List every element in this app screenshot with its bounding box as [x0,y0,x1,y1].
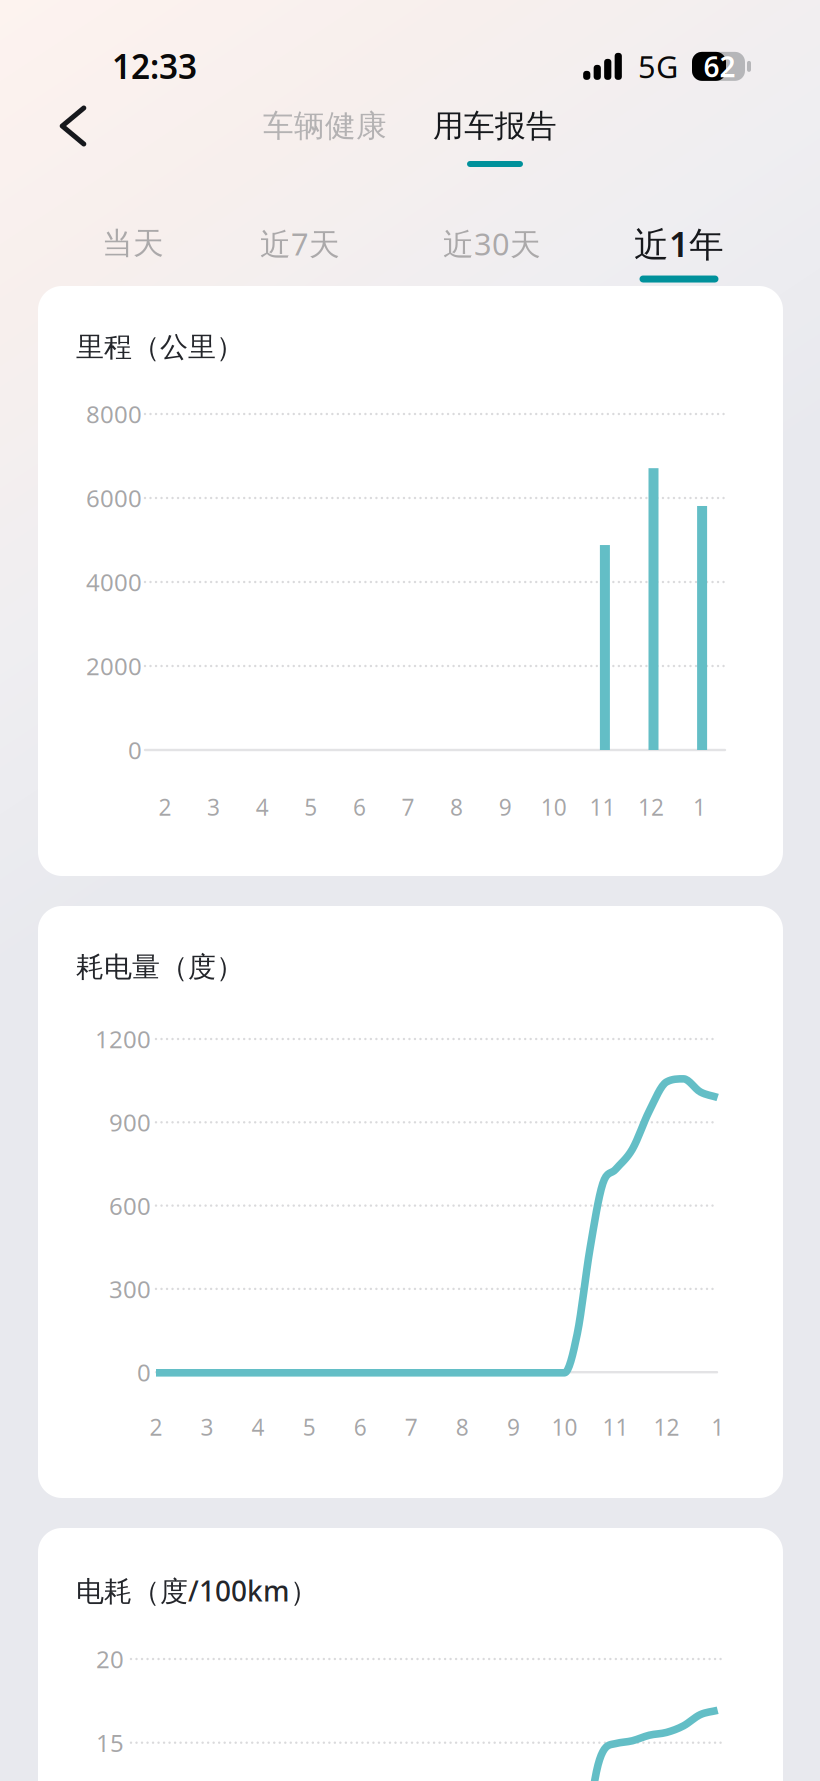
staticText: 4 [252,1412,265,1442]
staticText: 600 [109,1190,151,1222]
staticText: 62 [703,48,735,85]
staticText: 10 [551,1412,577,1442]
staticText: 里程（公里） [76,330,244,364]
staticText: 7 [405,1412,418,1442]
staticText: 11 [602,1412,628,1442]
button[interactable]: 当天 [43,216,223,286]
staticText: 6 [354,1412,367,1442]
staticText: 900 [109,1106,151,1138]
staticText: 2 [149,1412,162,1442]
staticText: 6 [353,792,366,822]
staticText: 用车报告 [433,107,557,145]
staticText: 10 [541,792,567,822]
staticText: 近7天 [260,223,340,264]
staticText: 当天 [102,225,164,262]
staticText: 6000 [86,482,142,514]
staticText: 2000 [86,650,142,682]
staticText: 5G [638,46,678,87]
staticText: 8 [450,792,463,822]
staticText: 9 [499,792,512,822]
staticText: 7 [401,792,414,822]
button[interactable]: 车辆健康 [250,98,400,154]
staticText: 0 [137,1356,151,1388]
staticText: 12 [638,792,664,822]
staticText: 12 [654,1412,680,1442]
staticText: 5 [303,1412,316,1442]
staticText: 2 [158,792,171,822]
staticText: 1 [693,792,706,822]
staticText: 15 [96,1727,124,1759]
staticText: 12:33 [112,44,197,88]
staticText: 3 [201,1412,214,1442]
staticText: 近30天 [443,223,541,264]
staticText: 8000 [86,398,142,430]
staticText: 300 [109,1273,151,1305]
staticText: 20 [96,1643,124,1675]
staticText: 9 [507,1412,520,1442]
staticText: 3 [207,792,220,822]
button[interactable]: 近30天 [402,216,582,286]
staticText: 1 [711,1412,724,1442]
button[interactable]: 用车报告 [420,98,570,167]
staticText: 5 [304,792,317,822]
staticText: 0 [128,734,142,766]
staticText: 11 [589,792,615,822]
button[interactable]: 近1年 [589,216,769,286]
button[interactable]: 近7天 [210,216,390,286]
button[interactable]: Back [40,98,96,154]
staticText: 车辆健康 [263,107,387,145]
staticText: 电耗（度/100km） [76,1572,318,1609]
staticText: 1200 [95,1023,151,1055]
staticText: 近1年 [634,220,724,266]
staticText: 耗电量（度） [76,950,244,984]
staticText: 4 [256,792,269,822]
staticText: 8 [456,1412,469,1442]
staticText: 4000 [86,566,142,598]
